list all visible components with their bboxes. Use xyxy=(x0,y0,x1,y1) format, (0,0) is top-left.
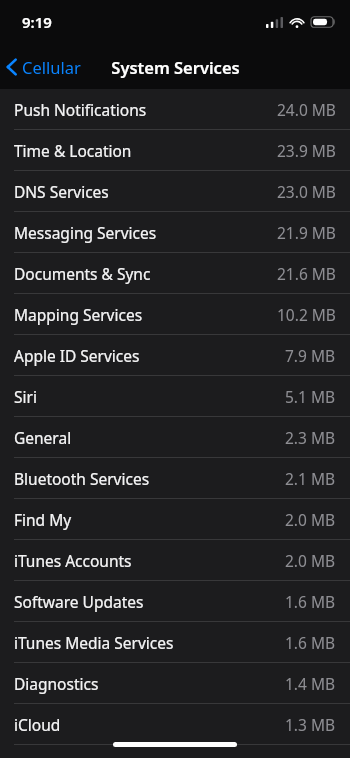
button[interactable]: Apple ID Services xyxy=(0,335,350,376)
staticText: General xyxy=(14,427,72,448)
staticText: 2.0 MB xyxy=(285,550,336,571)
button[interactable]: Cellular xyxy=(0,50,91,84)
staticText: 1.3 MB xyxy=(285,714,336,735)
staticText: iTunes Media Services xyxy=(14,632,174,653)
staticText: 5.1 MB xyxy=(285,386,336,407)
button[interactable]: Bluetooth Services xyxy=(0,458,350,499)
button[interactable]: Find My xyxy=(0,499,350,540)
button[interactable]: Diagnostics xyxy=(0,663,350,704)
staticText: Software Updates xyxy=(14,591,144,612)
staticText: 21.6 MB xyxy=(277,263,336,284)
staticText: 21.9 MB xyxy=(277,222,336,243)
staticText: 23.9 MB xyxy=(277,140,336,161)
staticText: iTunes Accounts xyxy=(14,550,132,571)
staticText: System Services xyxy=(111,56,240,78)
button[interactable]: iTunes Media Services xyxy=(0,622,350,663)
button[interactable]: DNS Services xyxy=(0,171,350,212)
button[interactable]: iTunes Accounts xyxy=(0,540,350,581)
staticText: Siri xyxy=(14,386,37,407)
button[interactable]: Software Updates xyxy=(0,581,350,622)
staticText: Mapping Services xyxy=(14,304,143,325)
staticText: Find My xyxy=(14,509,72,530)
staticText: Diagnostics xyxy=(14,673,99,694)
button[interactable]: General xyxy=(0,417,350,458)
staticText: 24.0 MB xyxy=(277,99,336,120)
button[interactable]: Time & Location xyxy=(0,130,350,171)
staticText: 1.4 MB xyxy=(285,673,336,694)
staticText: 2.1 MB xyxy=(285,468,336,489)
button[interactable]: Siri xyxy=(0,376,350,417)
staticText: Bluetooth Services xyxy=(14,468,150,489)
button[interactable]: Messaging Services xyxy=(0,212,350,253)
staticText: 9:19 xyxy=(22,12,52,32)
staticText: iCloud xyxy=(14,714,61,735)
staticText: 2.3 MB xyxy=(285,427,336,448)
button[interactable]: Documents & Sync xyxy=(0,253,350,294)
button[interactable]: Push Notifications xyxy=(0,89,350,130)
staticText: Cellular xyxy=(22,56,81,78)
staticText: 10.2 MB xyxy=(277,304,336,325)
staticText: Time & Location xyxy=(14,140,132,161)
button[interactable]: iCloud xyxy=(0,704,350,745)
staticText: Messaging Services xyxy=(14,222,157,243)
staticText: Apple ID Services xyxy=(14,345,140,366)
button[interactable]: Mapping Services xyxy=(0,294,350,335)
staticText: 7.9 MB xyxy=(285,345,336,366)
staticText: 1.6 MB xyxy=(285,632,336,653)
staticText: 23.0 MB xyxy=(277,181,336,202)
staticText: Documents & Sync xyxy=(14,263,151,284)
staticText: 2.0 MB xyxy=(285,509,336,530)
staticText: 1.6 MB xyxy=(285,591,336,612)
staticText: Push Notifications xyxy=(14,99,147,120)
staticText: DNS Services xyxy=(14,181,109,202)
